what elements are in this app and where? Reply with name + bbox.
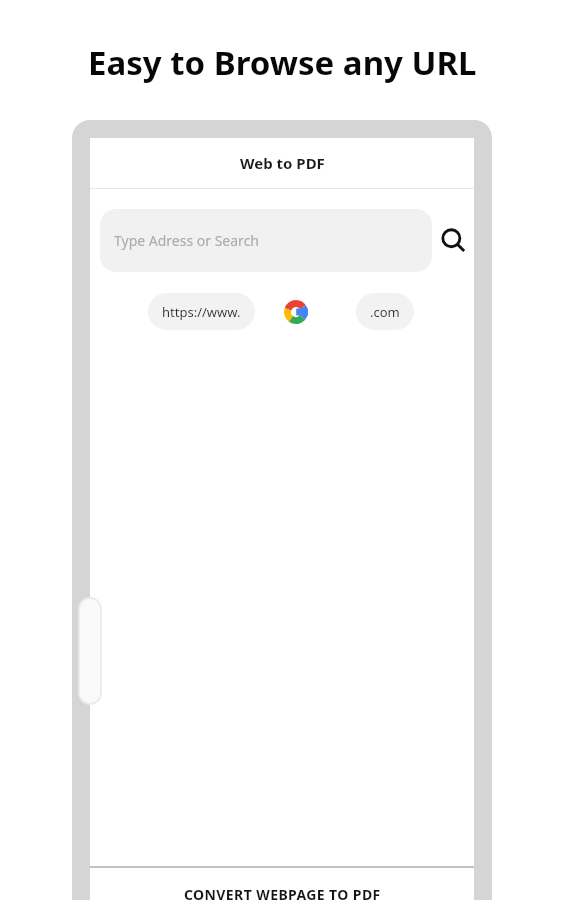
staticText: Web to PDF (240, 153, 325, 173)
staticText: CONVERT WEBPAGE TO PDF (184, 885, 381, 900)
button[interactable]: Search (432, 220, 474, 262)
button[interactable]: .com (356, 293, 414, 330)
staticText: .com (370, 303, 400, 321)
staticText: Type Adress or Search (114, 231, 259, 250)
button[interactable]: CONVERT WEBPAGE TO PDF (90, 868, 474, 900)
button[interactable]: Type Adress or Search (100, 209, 432, 272)
staticText: Easy to Browse any URL (88, 40, 477, 85)
staticText: https://www. (162, 303, 241, 321)
button[interactable]: Google (279, 295, 313, 329)
button[interactable]: https://www. (148, 293, 255, 330)
